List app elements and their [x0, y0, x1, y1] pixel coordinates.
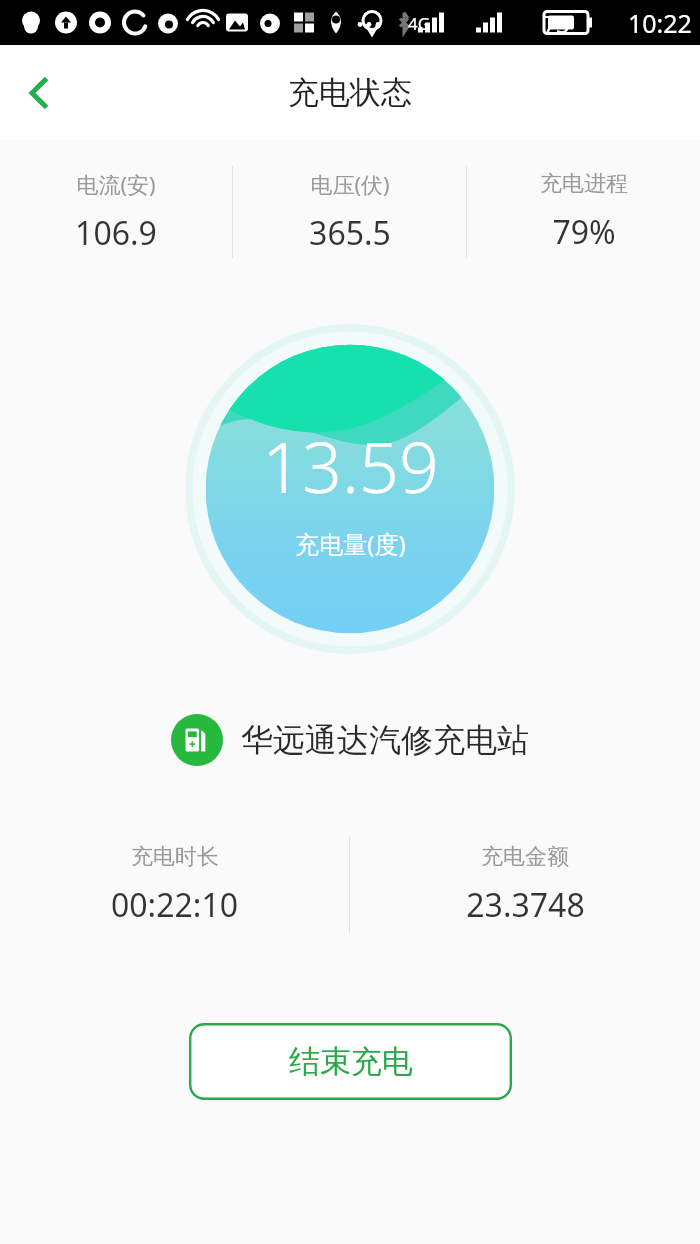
- staticText: 13.59: [262, 418, 439, 513]
- button[interactable]: 结束充电: [189, 1023, 512, 1100]
- staticText: 充电进程: [540, 170, 628, 198]
- staticText: 充电时长: [131, 843, 219, 871]
- button[interactable]: 华远通达汽修充电站: [0, 710, 700, 770]
- staticText: 电流(安): [76, 169, 156, 199]
- staticText: 79%: [552, 210, 616, 254]
- staticText: 充电状态: [288, 73, 412, 112]
- staticText: 10:22: [628, 6, 692, 40]
- staticText: 23.3748: [466, 883, 585, 927]
- staticText: 华远通达汽修充电站: [241, 720, 529, 760]
- staticText: 充电金额: [481, 843, 569, 871]
- staticText: 4G: [408, 12, 431, 35]
- staticText: 73: [543, 8, 570, 39]
- staticText: 106.9: [75, 211, 157, 255]
- staticText: 00:22:10: [111, 883, 238, 927]
- staticText: 电压(伏): [310, 169, 390, 199]
- button[interactable]: Back: [8, 61, 72, 125]
- staticText: 结束充电: [289, 1042, 413, 1081]
- staticText: 充电量(度): [295, 527, 406, 560]
- staticText: 365.5: [309, 211, 391, 255]
